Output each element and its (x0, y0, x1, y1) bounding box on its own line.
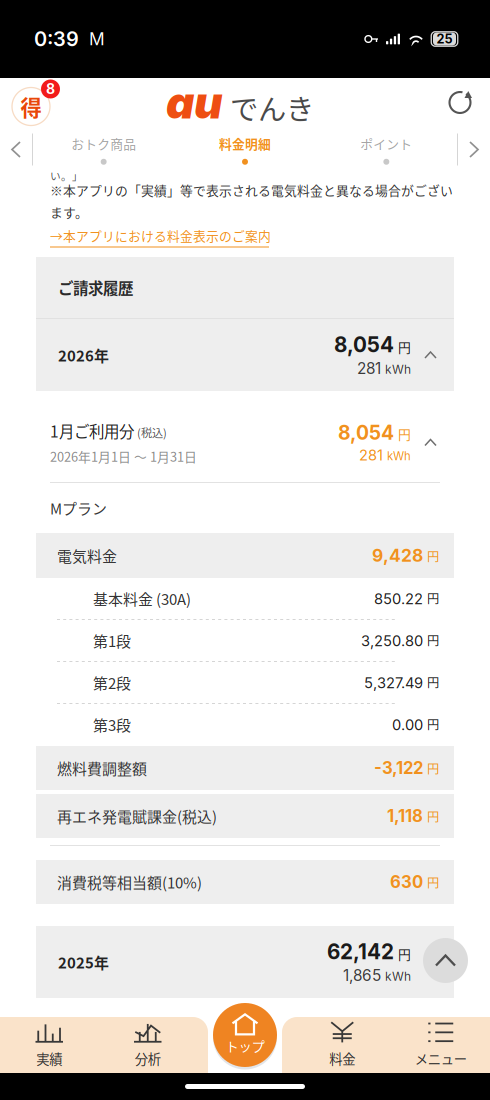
staticText: 円 (427, 873, 439, 891)
staticText: 実績 (36, 1049, 62, 1068)
staticText: 9,428 (372, 545, 423, 566)
staticText: 円 (427, 807, 439, 825)
staticText: 料金明細 (219, 134, 271, 153)
staticText: 630 (390, 872, 423, 892)
staticText: ※本アプリの「実績」等で表示される電気料金と異なる場合がござい (50, 181, 453, 199)
button[interactable]: ポイント (316, 127, 457, 172)
staticText: →本アプリにおける料金表示のご案内 (50, 226, 271, 245)
button[interactable]: おトク商品 (33, 127, 174, 172)
staticText: 8 (46, 80, 55, 97)
staticText: おトク商品 (71, 134, 136, 153)
staticText: (税込) (137, 424, 167, 440)
button[interactable]: 1月ご利用分 (36, 391, 454, 482)
button[interactable]: 実績 (0, 1017, 98, 1073)
staticText: 1,865 (343, 966, 381, 985)
staticText: 2026年1月1日 〜 1月31日 (50, 447, 197, 465)
staticText: 消費税等相当額(10%) (57, 871, 202, 893)
staticText: 281 (357, 359, 381, 378)
staticText: Mプラン (50, 497, 107, 519)
staticText: au (166, 76, 223, 129)
button[interactable]: 料金明細 (174, 127, 316, 172)
button[interactable]: 2026年 (36, 319, 454, 391)
staticText: 料金 (329, 1049, 355, 1068)
staticText: ポイント (360, 134, 412, 153)
staticText: 得 (20, 91, 41, 122)
staticText: 分析 (135, 1049, 161, 1068)
staticText: 850.22 (374, 590, 423, 608)
staticText: 電気料金 (57, 545, 117, 566)
staticText: 円 (427, 673, 439, 691)
staticText: 2025年 (58, 951, 109, 973)
staticText: kWh (385, 362, 411, 377)
staticText: 円 (427, 547, 439, 565)
staticText: トップ (225, 1036, 264, 1056)
staticText: 円 (398, 944, 411, 963)
staticText: 円 (427, 759, 439, 777)
staticText: でんき (230, 87, 314, 128)
staticText: 第1段 (93, 630, 131, 651)
staticText: ご請求履歴 (58, 276, 133, 299)
staticText: 2026年 (58, 344, 109, 366)
button[interactable]: お得情報 (12, 79, 60, 125)
staticText: kWh (385, 969, 411, 984)
staticText: 基本料金 (30A) (93, 588, 191, 609)
staticText: kWh (387, 449, 411, 463)
staticText: 3,250.80 (361, 632, 423, 650)
button[interactable]: メニュー (391, 1017, 490, 1073)
staticText: -3,122 (374, 758, 423, 778)
button[interactable]: 次のタブ (458, 127, 490, 172)
button[interactable]: トップへ戻る (423, 938, 468, 983)
button[interactable]: 分析 (98, 1017, 197, 1073)
button[interactable]: →本アプリにおける料金表示のご案内 (50, 223, 271, 249)
button[interactable]: 再読み込み (438, 80, 482, 124)
button[interactable]: 料金 (293, 1017, 391, 1073)
staticText: 再エネ発電賦課金(税込) (57, 805, 217, 827)
staticText: M (89, 28, 105, 49)
staticText: 25 (436, 31, 452, 47)
staticText: 円 (398, 424, 411, 443)
staticText: 燃料費調整額 (57, 757, 147, 779)
staticText: 5,327.49 (364, 674, 423, 692)
staticText: 62,142 (327, 939, 394, 964)
staticText: 1月ご利用分 (50, 419, 134, 442)
staticText: 円 (398, 337, 411, 356)
staticText: 0:39 (34, 27, 79, 51)
staticText: ます。 (50, 203, 88, 221)
staticText: 0.00 (392, 716, 423, 734)
staticText: 円 (427, 631, 439, 649)
staticText: 円 (427, 589, 439, 607)
button[interactable]: 2025年 (36, 926, 454, 998)
staticText: メニュー (415, 1049, 467, 1068)
staticText: 1,118 (387, 806, 423, 826)
button[interactable]: トップ (209, 999, 281, 1071)
staticText: 8,054 (338, 421, 394, 444)
staticText: 円 (427, 715, 439, 733)
staticText: 8,054 (334, 332, 394, 357)
staticText: 第2段 (93, 672, 131, 693)
staticText: 281 (359, 446, 383, 464)
staticText: い。」 (50, 168, 83, 183)
staticText: 第3段 (93, 714, 131, 735)
button[interactable]: 前のタブ (0, 127, 32, 172)
